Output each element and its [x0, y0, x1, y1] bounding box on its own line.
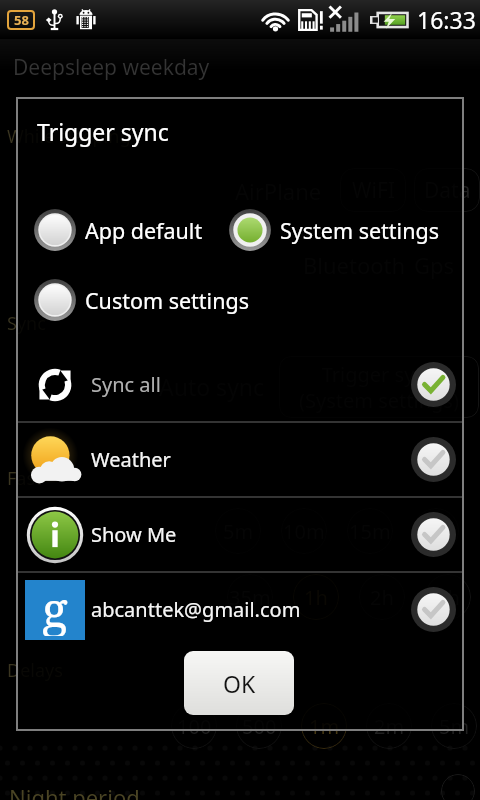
button[interactable]: 100: [171, 703, 217, 749]
staticText: 2m: [374, 713, 405, 740]
button[interactable]: Sync all: [16, 348, 464, 421]
staticText: 100: [177, 713, 212, 740]
button[interactable]: 1h: [293, 574, 339, 620]
staticText: Weather: [91, 446, 171, 473]
staticText: 30m: [415, 518, 457, 545]
staticText: 58: [14, 11, 29, 29]
staticText: App default: [85, 216, 203, 245]
button[interactable]: Weather: [16, 423, 464, 496]
staticText: Fast: [7, 466, 42, 491]
button[interactable]: 35m: [227, 574, 273, 620]
staticText: 5h: [436, 584, 460, 611]
staticText: Deepsleep weekday: [13, 53, 210, 82]
staticText: Show Me: [91, 521, 177, 548]
staticText: While sleeping: [7, 124, 131, 149]
staticText: System settings: [280, 216, 439, 245]
staticText: Trigger sync: [37, 116, 169, 147]
button[interactable]: 5m: [431, 703, 477, 749]
button[interactable]: Custom settings: [33, 278, 249, 322]
staticText: 1m: [309, 713, 340, 740]
button[interactable]: g: [16, 573, 464, 646]
staticText: Auto sync: [159, 371, 265, 402]
staticText: 16:33: [417, 4, 476, 35]
button[interactable]: Show Me: [16, 498, 464, 571]
button[interactable]: 30m: [413, 508, 459, 554]
staticText: abcanttek@gmail.com: [91, 596, 301, 623]
button[interactable]: System settings: [228, 208, 439, 252]
staticText: Delays: [7, 658, 63, 683]
staticText: 35m: [229, 584, 271, 611]
staticText: Data: [424, 176, 471, 205]
staticText: 5m: [439, 713, 470, 740]
staticText: OK: [223, 668, 256, 699]
staticText: Sync all: [91, 371, 161, 398]
staticText: Sync: [7, 311, 46, 336]
button[interactable]: App default: [33, 208, 203, 252]
button[interactable]: 5h: [425, 574, 471, 620]
staticText: Night period: [9, 782, 140, 800]
button[interactable]: 2m: [366, 703, 412, 749]
button[interactable]: OK: [184, 651, 294, 715]
button[interactable]: Data: [414, 168, 480, 212]
button[interactable]: Trigger sync (System settings): [279, 356, 479, 418]
staticText: Custom settings: [85, 286, 249, 315]
button[interactable]: 1m: [301, 703, 347, 749]
button[interactable]: Info: [441, 774, 475, 800]
staticText: 500: [242, 713, 277, 740]
staticText: g: [42, 576, 68, 636]
staticText: Trigger sync (System settings): [299, 361, 459, 413]
button[interactable]: 500: [236, 703, 282, 749]
